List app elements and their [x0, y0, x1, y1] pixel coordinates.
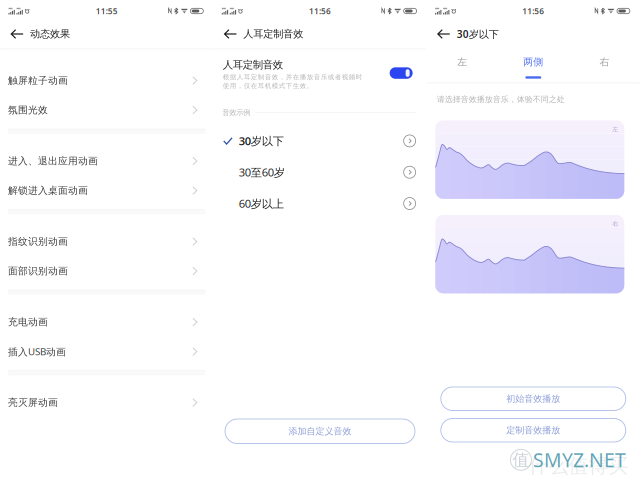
button[interactable]: 60岁以上: [213, 188, 427, 219]
button[interactable]: 进入、退出应用动画: [0, 146, 213, 176]
staticText: 右: [612, 220, 618, 227]
button[interactable]: 解锁进入桌面动画: [0, 176, 213, 205]
button[interactable]: 30岁以下: [213, 125, 427, 157]
button[interactable]: 充电动画: [0, 307, 213, 337]
staticText: 充电动画: [8, 316, 48, 328]
staticText: 请选择音效播放音乐，体验不同之处: [437, 94, 565, 104]
staticText: 左: [457, 56, 467, 68]
button[interactable]: 指纹识别动画: [0, 227, 213, 256]
button[interactable]: 氛围光效: [0, 95, 213, 125]
staticText: 初始音效播放: [506, 393, 560, 404]
button[interactable]: 返回: [4, 22, 30, 46]
staticText: 两側: [523, 56, 543, 68]
button[interactable]: 面部识别动画: [0, 256, 213, 286]
button[interactable]: 亮灭屏动画: [0, 388, 213, 417]
staticText: 亮灭屏动画: [8, 396, 58, 409]
staticText: 音效示例: [222, 108, 250, 117]
staticText: 11:55: [96, 5, 118, 17]
staticText: 值: [512, 449, 529, 470]
staticText: 定制音效播放: [506, 424, 560, 436]
button[interactable]: 右: [569, 54, 640, 82]
staticText: 根据人耳定制音效，并在播放音乐或者视频时: [223, 73, 363, 81]
staticText: 氛围光效: [8, 104, 48, 116]
staticText: 人耳定制音效: [243, 28, 303, 40]
button[interactable]: 30至60岁: [213, 157, 427, 188]
staticText: 进入、退出应用动画: [8, 155, 98, 167]
staticText: 插入USB动画: [8, 345, 66, 358]
button[interactable]: 两側: [498, 54, 569, 82]
staticText: SMYZ.NET: [533, 447, 626, 473]
staticText: 指纹识别动画: [8, 235, 68, 248]
button[interactable]: 插入USB动画: [0, 337, 213, 366]
staticText: 人耳定制音效: [223, 58, 283, 71]
button[interactable]: 定制音效播放: [441, 418, 626, 442]
staticText: 右: [599, 56, 609, 68]
button[interactable]: 初始音效播放: [441, 387, 626, 410]
staticText: 30至60岁: [239, 165, 285, 180]
staticText: 添加自定义音效: [288, 425, 351, 437]
staticText: 11:56: [309, 5, 331, 17]
staticText: 触屏粒子动画: [8, 74, 68, 87]
button[interactable]: 返回: [431, 22, 457, 46]
staticText: 11:56: [522, 5, 544, 17]
button[interactable]: 添加自定义音效: [225, 419, 415, 443]
staticText: 什么值得买: [528, 453, 628, 478]
staticText: 动态效果: [30, 28, 70, 40]
button[interactable]: 左: [427, 54, 498, 82]
staticText: 解锁进入桌面动画: [8, 184, 88, 197]
button[interactable]: 触屏粒子动画: [0, 66, 213, 95]
staticText: 使用，仅在耳机模式下生效。: [223, 82, 314, 90]
staticText: 60岁以上: [239, 196, 284, 211]
staticText: 30岁以下: [239, 133, 284, 149]
staticText: 面部识别动画: [8, 265, 68, 277]
staticText: 左: [612, 125, 618, 133]
button[interactable]: 人耳定制音效开关: [390, 58, 413, 79]
staticText: 30岁以下: [457, 27, 499, 41]
button[interactable]: 返回: [217, 22, 243, 46]
